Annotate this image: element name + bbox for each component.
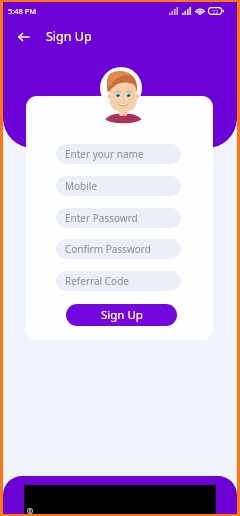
staticText: Referral Code [65, 274, 129, 288]
button[interactable]: Back [11, 25, 35, 49]
staticText: 72 [212, 8, 219, 15]
button[interactable]: Confirm Password [56, 239, 181, 259]
button[interactable]: Mobile [56, 176, 181, 196]
staticText: Sign Up [46, 28, 92, 45]
button[interactable]: Sign Up [66, 304, 177, 326]
button[interactable]: Enter your name [56, 144, 181, 164]
other: Ad info [27, 508, 33, 514]
staticText: Enter your name [65, 147, 144, 161]
staticText: Sign Up [101, 307, 143, 323]
staticText: Enter Passowrd [65, 211, 138, 225]
staticText: Confirm Password [65, 242, 151, 256]
button[interactable]: Enter Passowrd [56, 208, 181, 228]
staticText: 5:48 PM [8, 6, 37, 16]
staticText: Mobile [65, 179, 98, 193]
button[interactable]: Referral Code [56, 271, 181, 291]
